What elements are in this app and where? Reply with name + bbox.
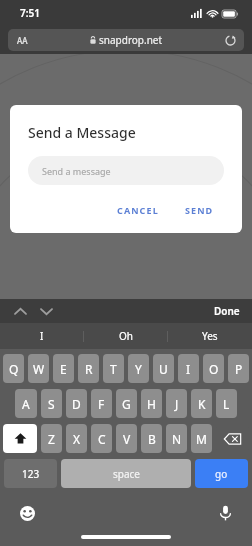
button[interactable]: P: [228, 354, 249, 383]
staticText: SEND: [185, 204, 214, 216]
button[interactable]: G: [116, 389, 137, 418]
button[interactable]: N: [166, 424, 187, 453]
button[interactable]: H: [141, 389, 162, 418]
button[interactable]: Y: [128, 354, 149, 383]
button[interactable]: M: [191, 424, 212, 453]
staticText: F: [98, 396, 105, 412]
staticText: 7:51: [20, 6, 40, 20]
button[interactable]: 123: [4, 459, 57, 488]
staticText: K: [198, 396, 206, 412]
button[interactable]: A: [15, 389, 37, 418]
button[interactable]: SEND: [179, 201, 220, 219]
staticText: Send a message: [42, 165, 111, 177]
staticText: V: [123, 431, 131, 447]
staticText: D: [72, 396, 81, 412]
button[interactable]: Previous field: [10, 301, 30, 321]
staticText: M: [196, 431, 207, 447]
button[interactable]: Yes: [168, 323, 252, 349]
button[interactable]: L: [216, 389, 237, 418]
staticText: Q: [9, 361, 19, 377]
staticText: Send a Message: [28, 123, 136, 142]
button[interactable]: Send a message: [28, 156, 224, 185]
button[interactable]: CANCEL: [111, 201, 165, 219]
staticText: Oh: [119, 329, 133, 343]
button[interactable]: B: [141, 424, 162, 453]
button[interactable]: Backspace: [216, 424, 249, 453]
button[interactable]: D: [66, 389, 87, 418]
staticText: Z: [48, 431, 55, 447]
button[interactable]: Oh: [84, 323, 168, 349]
button[interactable]: go: [195, 459, 248, 488]
staticText: Yes: [202, 329, 218, 343]
button[interactable]: Dictation: [214, 502, 236, 524]
staticText: G: [122, 396, 131, 412]
staticText: P: [235, 361, 243, 377]
button[interactable]: V: [116, 424, 137, 453]
staticText: AA: [17, 35, 28, 46]
staticText: I: [186, 361, 191, 377]
button[interactable]: W: [28, 354, 49, 383]
button[interactable]: T: [103, 354, 124, 383]
button[interactable]: Next field: [36, 301, 56, 321]
staticText: B: [148, 431, 156, 447]
staticText: L: [223, 396, 230, 412]
button[interactable]: E: [53, 354, 74, 383]
button[interactable]: J: [166, 389, 187, 418]
staticText: E: [60, 361, 67, 377]
staticText: U: [159, 361, 168, 377]
staticText: H: [147, 396, 156, 412]
button[interactable]: X: [66, 424, 87, 453]
staticText: C: [98, 431, 106, 447]
button[interactable]: space: [61, 459, 191, 488]
staticText: J: [175, 396, 179, 412]
staticText: R: [85, 361, 93, 377]
staticText: go: [215, 467, 228, 481]
button[interactable]: Shift: [3, 424, 37, 453]
button[interactable]: F: [91, 389, 112, 418]
staticText: O: [209, 361, 219, 377]
button[interactable]: K: [191, 389, 212, 418]
staticText: A: [22, 396, 30, 412]
button[interactable]: AA: [8, 29, 244, 51]
staticText: Y: [135, 361, 142, 377]
button[interactable]: I: [0, 323, 84, 349]
staticText: Done: [214, 304, 240, 318]
button[interactable]: Q: [3, 354, 24, 383]
staticText: space: [113, 467, 140, 481]
button[interactable]: I: [178, 354, 199, 383]
button[interactable]: U: [153, 354, 174, 383]
staticText: CANCEL: [117, 204, 159, 216]
staticText: X: [73, 431, 81, 447]
staticText: snapdrop.net: [99, 33, 163, 47]
staticText: 123: [22, 467, 40, 481]
button[interactable]: O: [203, 354, 224, 383]
staticText: I: [40, 329, 44, 343]
staticText: W: [33, 361, 45, 377]
button[interactable]: Emoji: [16, 502, 38, 524]
button[interactable]: C: [91, 424, 112, 453]
staticText: T: [110, 361, 117, 377]
button[interactable]: Done: [206, 300, 252, 322]
button[interactable]: S: [41, 389, 62, 418]
staticText: N: [172, 431, 182, 447]
staticText: S: [48, 396, 55, 412]
button[interactable]: Z: [41, 424, 62, 453]
button[interactable]: Reload: [223, 33, 237, 47]
button[interactable]: R: [78, 354, 99, 383]
